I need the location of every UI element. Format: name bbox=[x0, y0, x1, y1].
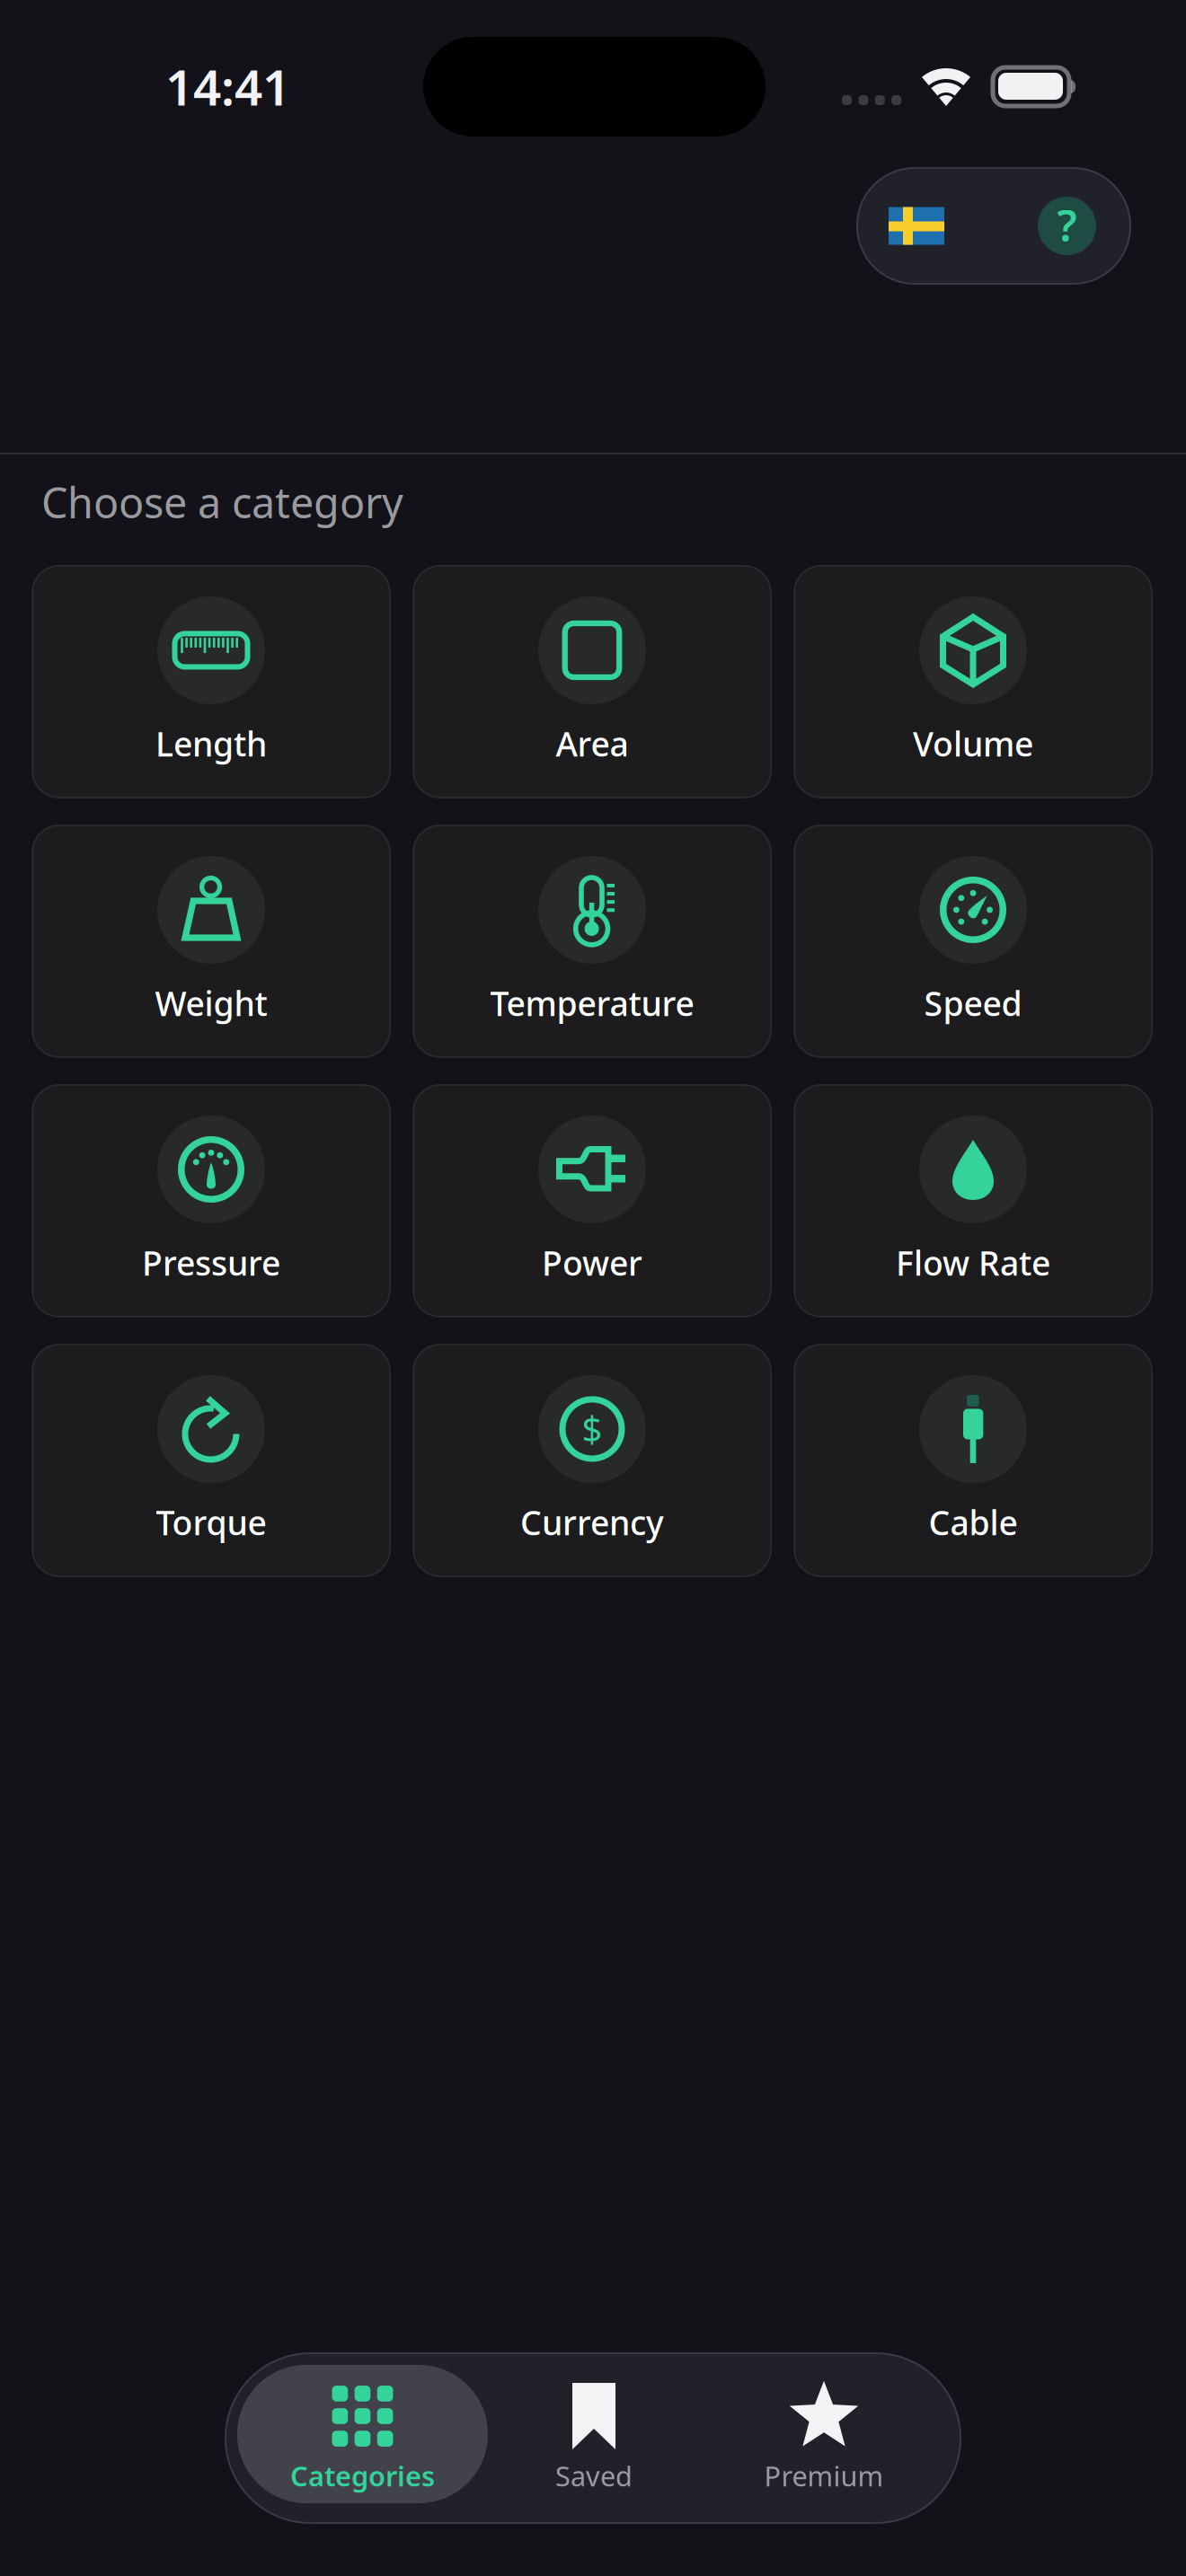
staticText: Length bbox=[155, 721, 267, 766]
button[interactable]: Speed bbox=[794, 825, 1152, 1057]
staticText: 14:41 bbox=[165, 54, 290, 119]
staticText: Temperature bbox=[490, 981, 694, 1025]
staticText: Choose a category bbox=[41, 474, 403, 530]
staticText: Pressure bbox=[142, 1240, 280, 1285]
staticText: Cable bbox=[929, 1500, 1018, 1545]
button[interactable]: $ bbox=[413, 1345, 771, 1576]
button[interactable]: Temperature bbox=[413, 825, 771, 1057]
button[interactable]: Cable bbox=[794, 1345, 1152, 1576]
staticText: $ bbox=[582, 1404, 602, 1452]
staticText: Area bbox=[556, 721, 628, 766]
button[interactable]: Volume bbox=[794, 566, 1152, 798]
staticText: Volume bbox=[913, 721, 1033, 766]
button[interactable]: Weight bbox=[32, 825, 390, 1057]
staticText: Weight bbox=[155, 981, 267, 1025]
button[interactable]: Power bbox=[413, 1085, 771, 1317]
button[interactable]: Pressure bbox=[32, 1085, 390, 1317]
button[interactable]: Flow Rate bbox=[794, 1085, 1152, 1317]
staticText: Categories bbox=[290, 2457, 435, 2494]
staticText: Power bbox=[542, 1240, 642, 1285]
button[interactable]: Language bbox=[858, 168, 975, 284]
button[interactable]: Categories bbox=[237, 2365, 488, 2503]
button[interactable]: Torque bbox=[32, 1345, 390, 1576]
staticText: Saved bbox=[555, 2457, 633, 2494]
staticText: Speed bbox=[924, 981, 1022, 1025]
button[interactable]: Length bbox=[32, 566, 390, 798]
staticText: Torque bbox=[156, 1500, 266, 1545]
staticText: Currency bbox=[520, 1500, 664, 1545]
button[interactable]: Area bbox=[413, 566, 771, 798]
button[interactable]: Saved bbox=[479, 2365, 709, 2503]
button[interactable]: Premium bbox=[709, 2365, 939, 2503]
button[interactable]: Help bbox=[1020, 168, 1114, 284]
staticText: ? bbox=[1057, 196, 1077, 254]
staticText: Premium bbox=[764, 2457, 884, 2494]
staticText: Flow Rate bbox=[896, 1240, 1050, 1285]
